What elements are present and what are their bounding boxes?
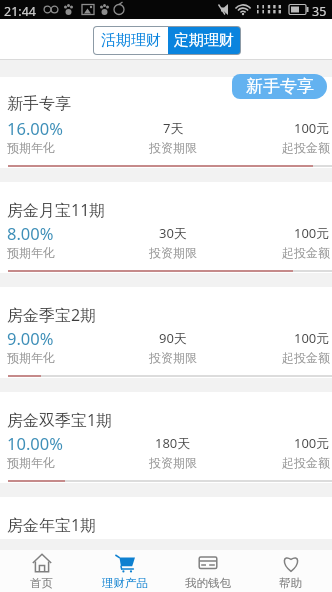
staticText: 8.00% [7, 222, 54, 244]
button[interactable]: 新手专享 [232, 74, 327, 99]
staticText: 9.00% [7, 327, 54, 349]
staticText: 起投金额 [282, 350, 330, 365]
staticText: 10.00% [7, 432, 63, 454]
button[interactable]: 房金年宝1期 [0, 497, 332, 539]
staticText: 起投金额 [282, 245, 330, 260]
staticText: 180天 [155, 434, 191, 452]
staticText: 预期年化 [7, 140, 55, 155]
staticText: 16.00% [7, 117, 63, 139]
button[interactable]: 活期理财 [94, 27, 168, 54]
button[interactable]: 定期理财 [168, 27, 240, 54]
staticText: 新手专享 [7, 94, 71, 114]
staticText: 新手专享 [246, 76, 314, 97]
staticText: 7天 [163, 119, 184, 137]
staticText: 房金双季宝1期 [7, 409, 113, 431]
staticText: 定期理财 [174, 31, 234, 50]
staticText: 100元 [294, 329, 330, 347]
staticText: 房金月宝11期 [7, 199, 106, 221]
button[interactable]: 我的钱包 [166, 550, 249, 592]
staticText: 投资期限 [149, 140, 197, 155]
staticText: 投资期限 [149, 455, 197, 470]
button[interactable]: 房金月宝11期 [0, 182, 332, 273]
staticText: 100元 [294, 224, 330, 242]
staticText: 理财产品 [102, 576, 148, 590]
button[interactable]: 帮助 [249, 550, 332, 592]
button[interactable]: 新手专享 [0, 77, 332, 168]
staticText: 90天 [159, 329, 187, 347]
staticText: 21:44 [4, 3, 36, 20]
staticText: 预期年化 [7, 350, 55, 365]
staticText: 起投金额 [282, 140, 330, 155]
button[interactable]: 房金季宝2期 [0, 287, 332, 378]
staticText: 30天 [159, 224, 187, 242]
button[interactable]: 理财产品 [83, 550, 166, 592]
staticText: 投资期限 [149, 350, 197, 365]
staticText: 帮助 [279, 576, 302, 590]
staticText: 活期理财 [101, 31, 161, 50]
staticText: 首页 [30, 576, 53, 590]
button[interactable]: 首页 [0, 550, 83, 592]
staticText: 100元 [294, 119, 330, 137]
staticText: 起投金额 [282, 455, 330, 470]
staticText: 我的钱包 [185, 576, 231, 590]
staticText: 投资期限 [149, 245, 197, 260]
staticText: 房金季宝2期 [7, 304, 97, 326]
staticText: 预期年化 [7, 455, 55, 470]
staticText: 房金年宝1期 [7, 514, 97, 536]
staticText: 35 [312, 3, 327, 20]
staticText: 100元 [294, 434, 330, 452]
staticText: 预期年化 [7, 245, 55, 260]
button[interactable]: 房金双季宝1期 [0, 392, 332, 483]
